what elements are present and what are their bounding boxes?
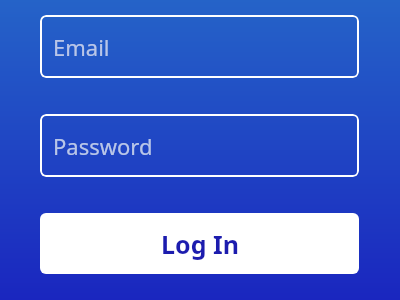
button[interactable]: Email [40, 15, 359, 78]
staticText: Password [53, 131, 153, 161]
button[interactable]: Password [40, 114, 359, 177]
button[interactable]: Log In [40, 213, 359, 274]
staticText: Log In [161, 227, 239, 261]
staticText: Email [53, 32, 110, 62]
